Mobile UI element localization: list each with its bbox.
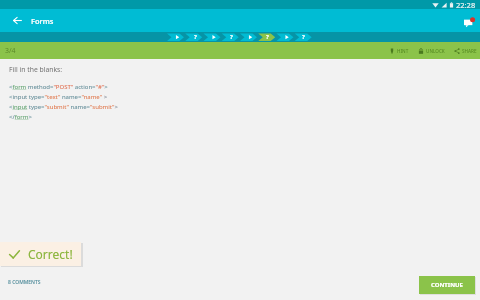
button[interactable]: Correct! (0, 242, 81, 266)
staticText: <input type="submit" name="submit"> (9, 103, 118, 111)
staticText: Correct! (28, 246, 73, 262)
staticText: 22:28 (456, 0, 476, 9)
button[interactable]: Comments (459, 11, 479, 31)
staticText: </form> (9, 113, 32, 121)
button[interactable]: 8 COMMENTS (8, 279, 41, 286)
button[interactable]: SHARE (454, 48, 477, 54)
staticText: UNLOCK (426, 48, 445, 54)
button[interactable]: Back (0, 9, 31, 32)
staticText: <form method="POST" action="#"> (9, 83, 108, 91)
staticText: ? (230, 33, 233, 41)
staticText: <input type="text" name="name" > (9, 93, 108, 101)
staticText: ? (302, 33, 305, 41)
button[interactable]: UNLOCK (418, 48, 445, 54)
staticText: ? (194, 33, 197, 41)
staticText: Fill in the blanks: (9, 65, 63, 74)
staticText: Forms (31, 16, 54, 26)
staticText: ? (266, 33, 269, 41)
staticText: 3/4 (5, 46, 16, 56)
staticText: HINT (397, 48, 409, 54)
button[interactable]: CONTINUE (419, 276, 475, 294)
staticText: CONTINUE (431, 281, 463, 289)
button[interactable]: HINT (389, 48, 409, 54)
staticText: SHARE (462, 48, 477, 54)
